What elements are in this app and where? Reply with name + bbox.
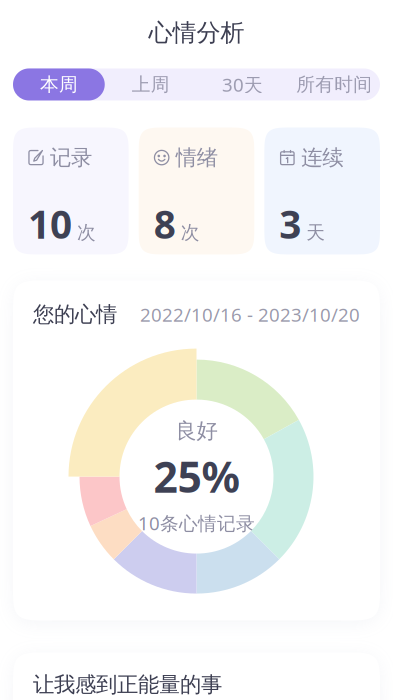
staticText: 次 (77, 221, 96, 244)
staticText: 连续 (301, 144, 343, 171)
staticText: 次 (181, 221, 200, 244)
staticText: 10 (28, 198, 72, 249)
button[interactable]: 上周 (105, 68, 197, 100)
staticText: 上周 (132, 73, 170, 96)
staticText: 您的心情 (33, 301, 117, 328)
staticText: 2022/10/16 - 2023/10/20 (140, 302, 360, 327)
staticText: 天 (306, 221, 325, 244)
staticText: 3 (279, 198, 301, 249)
staticText: 记录 (50, 144, 92, 171)
staticText: 心情分析 (148, 18, 244, 47)
staticText: 8 (154, 198, 176, 249)
staticText: 所有时间 (296, 73, 372, 96)
button[interactable]: 本周 (13, 68, 105, 100)
staticText: 良好 (175, 418, 217, 444)
staticText: 10条心情记录 (138, 511, 255, 535)
staticText: 让我感到正能量的事 (33, 671, 222, 698)
staticText: 情绪 (176, 144, 218, 171)
staticText: 本周 (40, 73, 78, 96)
staticText: 25% (153, 448, 239, 505)
button[interactable]: 所有时间 (288, 68, 380, 100)
button[interactable]: 30天 (196, 68, 288, 100)
staticText: 30天 (222, 72, 263, 97)
